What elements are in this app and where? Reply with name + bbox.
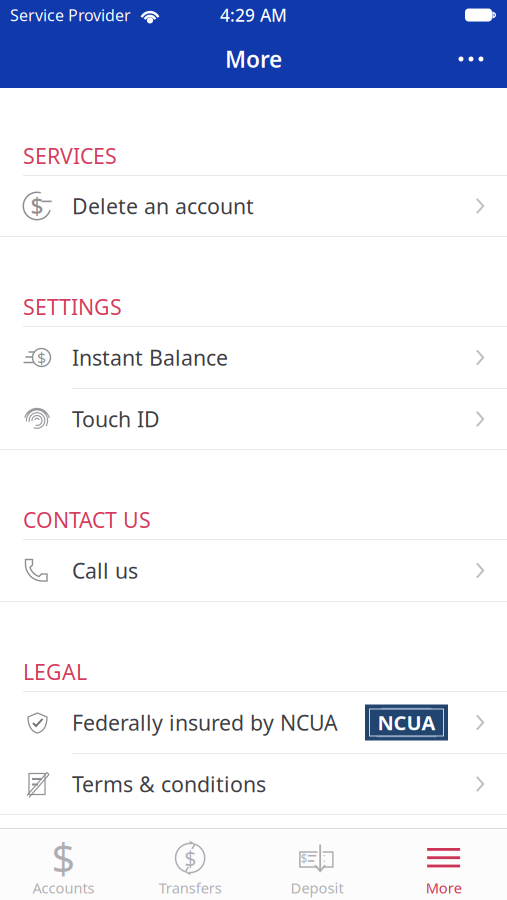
staticText: SETTINGS	[23, 293, 122, 321]
staticText: Accounts	[32, 878, 94, 897]
button[interactable]: $	[0, 327, 507, 388]
staticText: Deposit	[290, 878, 343, 897]
staticText: Service Provider	[10, 4, 131, 26]
staticText: Touch ID	[72, 405, 160, 433]
button[interactable]: Terms & conditions	[0, 754, 507, 814]
staticText: 4:29 AM	[220, 3, 287, 26]
staticText: LEGAL	[23, 658, 87, 686]
staticText: Terms & conditions	[72, 770, 266, 798]
staticText: NCUA	[377, 709, 435, 736]
staticText: $	[37, 347, 46, 368]
button[interactable]: Touch ID	[0, 389, 507, 449]
staticText: Call us	[72, 556, 138, 585]
staticText: $	[300, 850, 307, 866]
button[interactable]: $	[253, 829, 380, 900]
staticText: $	[30, 191, 43, 221]
staticText: $	[51, 831, 75, 885]
button[interactable]: More	[380, 829, 507, 900]
staticText: Instant Balance	[72, 343, 228, 372]
button[interactable]: $	[0, 176, 507, 236]
staticText: Delete an account	[72, 192, 254, 220]
staticText: Federally insured by NCUA	[72, 708, 338, 737]
button[interactable]: $	[127, 829, 254, 900]
staticText: $	[184, 844, 196, 872]
staticText: More	[225, 44, 282, 74]
staticText: CONTACT US	[23, 506, 151, 534]
button[interactable]: $	[0, 829, 127, 900]
staticText: More	[426, 878, 462, 897]
button[interactable]: Call us	[0, 540, 507, 601]
staticText: SERVICES	[23, 142, 117, 170]
button[interactable]: More options	[443, 37, 499, 81]
button[interactable]: Federally insured by NCUA	[0, 692, 507, 753]
staticText: Transfers	[159, 878, 222, 897]
